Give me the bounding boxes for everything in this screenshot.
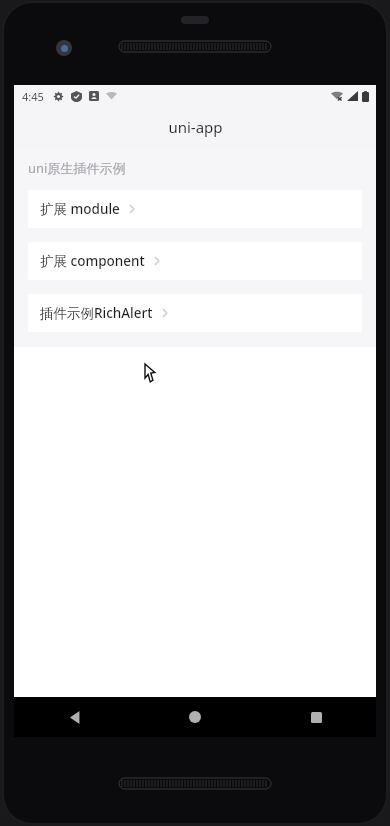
button[interactable]: 扩展 component [28,242,362,280]
staticText: 扩展 module [40,200,120,218]
button[interactable]: 插件示例RichAlert [28,294,362,332]
button[interactable]: Back [52,697,96,737]
staticText: uni原生插件示例 [28,159,126,177]
button[interactable]: Home [173,697,217,737]
button[interactable]: 扩展 module [28,190,362,228]
staticText: 插件示例RichAlert [40,304,153,322]
staticText: 扩展 component [40,252,145,270]
button[interactable]: Recent apps [294,697,338,737]
staticText: uni-app [168,117,223,137]
staticText: 4:45 [22,89,44,104]
